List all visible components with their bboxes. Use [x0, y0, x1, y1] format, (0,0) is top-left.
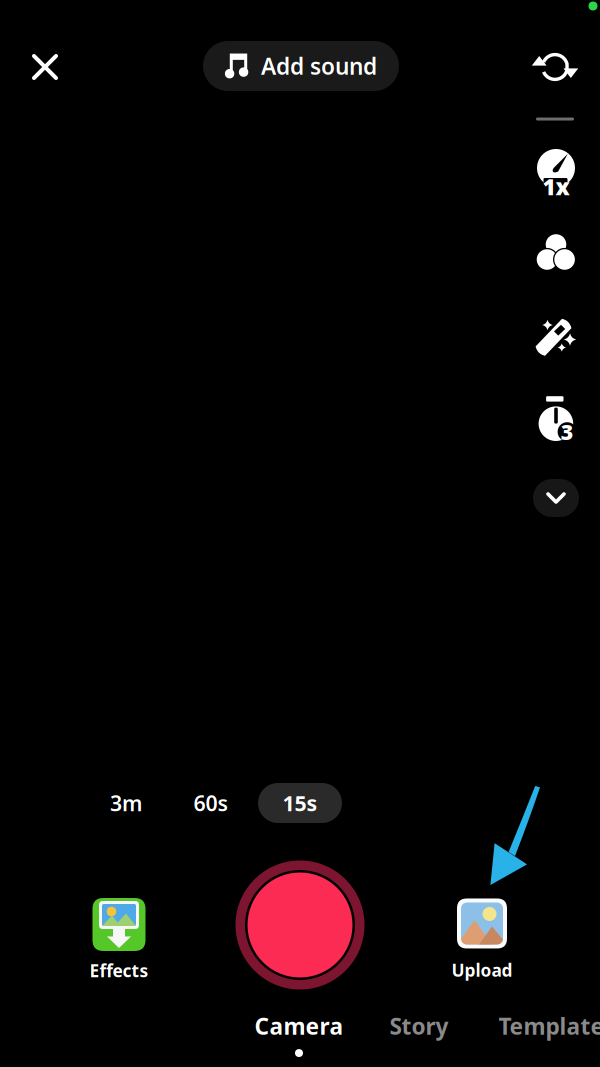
staticText: Add sound	[261, 51, 377, 81]
staticText: Upload	[451, 958, 512, 981]
button[interactable]: Camera	[244, 1005, 354, 1063]
staticText: 60s	[193, 789, 228, 817]
button[interactable]: 15s	[258, 783, 342, 823]
staticText: 1x	[542, 171, 569, 201]
button[interactable]: Beautify	[528, 310, 584, 366]
staticText: Templates	[498, 1011, 600, 1041]
button[interactable]: Record	[235, 860, 364, 989]
button[interactable]: Filters	[528, 225, 584, 281]
button[interactable]: More options	[533, 479, 579, 517]
button[interactable]: 3m	[89, 783, 163, 823]
staticText: Effects	[89, 959, 148, 982]
button[interactable]: Timer	[528, 390, 584, 446]
button[interactable]: Add sound	[203, 41, 399, 91]
button[interactable]: Speed	[528, 144, 584, 200]
button[interactable]: Effects	[89, 898, 148, 982]
button[interactable]: Upload	[451, 898, 512, 981]
button[interactable]: Story	[379, 1005, 459, 1047]
button[interactable]: 60s	[174, 783, 248, 823]
staticText: Story	[389, 1011, 448, 1041]
staticText: 3m	[110, 789, 142, 817]
staticText: 3	[561, 417, 574, 446]
staticText: Camera	[254, 1011, 343, 1041]
button[interactable]: Templates	[492, 1005, 600, 1047]
button[interactable]: Close	[18, 40, 72, 94]
staticText: 15s	[282, 789, 317, 817]
button[interactable]: Flip camera	[528, 40, 582, 94]
